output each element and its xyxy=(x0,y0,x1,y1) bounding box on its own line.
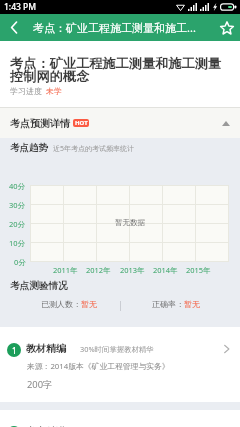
staticText: HOT xyxy=(75,119,88,127)
staticText: 教材精编 xyxy=(26,342,66,355)
staticText: 40分 xyxy=(9,181,26,191)
staticText: 已测人数： xyxy=(41,299,81,309)
button[interactable]: Back xyxy=(0,14,27,41)
staticText: 近5年考点的考试频率统计 xyxy=(53,144,135,154)
staticText: 暂无 xyxy=(184,299,200,309)
staticText: 考点预测详情 xyxy=(10,117,70,130)
button[interactable]: 考点预测详情 xyxy=(0,108,240,138)
button[interactable]: Favorite xyxy=(214,15,240,41)
staticText: 考点：矿业工程施工测量和施工... xyxy=(33,20,196,35)
button[interactable]: 2 xyxy=(0,410,240,427)
staticText: 2012年 xyxy=(86,265,111,275)
staticText: 考点精讲 xyxy=(26,425,66,427)
staticText: 1:43 PM xyxy=(4,1,37,13)
button[interactable]: 1 xyxy=(0,327,240,402)
staticText: 暂无数据 xyxy=(115,218,145,227)
staticText: 0分 xyxy=(14,257,26,267)
staticText: 考点：矿业工程施工测量和施工测量 控制网的概念 xyxy=(10,55,221,85)
staticText: 未学 xyxy=(46,86,62,96)
staticText: 30分 xyxy=(9,200,26,210)
staticText: 20分 xyxy=(9,219,26,229)
staticText: 考点测验情况 xyxy=(10,280,68,292)
staticText: 10分 xyxy=(9,238,26,248)
staticText: 2015年 xyxy=(186,265,211,275)
staticText: 2013年 xyxy=(120,265,145,275)
staticText: 2014年 xyxy=(153,265,178,275)
staticText: 来源：2014版本《矿业工程管理与实务》 xyxy=(27,361,170,372)
staticText: 正确率： xyxy=(152,299,184,309)
staticText: 2011年 xyxy=(53,265,78,275)
staticText: 暂无 xyxy=(81,299,97,309)
staticText: 1 xyxy=(12,345,17,356)
staticText: 考点趋势 xyxy=(10,142,48,154)
staticText: 30%时间掌握教材精华 xyxy=(80,344,154,354)
staticText: 学习进度 xyxy=(10,86,42,96)
staticText: 200字 xyxy=(27,378,53,391)
